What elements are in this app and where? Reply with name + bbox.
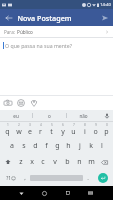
staticText: Nova Postagem: [17, 13, 72, 23]
staticText: x: [30, 157, 34, 167]
staticText: 9: [95, 123, 97, 127]
staticText: 2: [18, 123, 20, 127]
button[interactable]: c: [37, 154, 49, 170]
staticText: j: [79, 141, 81, 151]
staticText: Para:: [4, 29, 15, 35]
button[interactable]: Sentimento: [15, 97, 27, 109]
staticText: Público: [17, 29, 33, 35]
button[interactable]: Voltar: [10, 186, 33, 200]
button[interactable]: n: [73, 154, 85, 170]
button[interactable]: 7: [68, 122, 79, 138]
button[interactable]: Voz: [100, 110, 113, 121]
button[interactable]: Início: [33, 186, 56, 200]
staticText: k: [89, 141, 93, 151]
staticText: g: [55, 141, 60, 151]
button[interactable]: v: [49, 154, 61, 170]
button[interactable]: o: [33, 110, 66, 121]
staticText: 5: [51, 123, 53, 127]
button[interactable]: Recentes: [56, 186, 79, 200]
button[interactable]: b: [61, 154, 73, 170]
button[interactable]: Enter: [93, 170, 112, 186]
staticText: o: [48, 113, 51, 119]
staticText: l: [101, 141, 103, 151]
button[interactable]: x: [26, 154, 37, 170]
button[interactable]: ?1☺: [1, 170, 20, 186]
button[interactable]: 1: [1, 122, 13, 138]
staticText: a: [10, 141, 14, 151]
button[interactable]: Publicar: [96, 9, 113, 26]
button[interactable]: 5: [46, 122, 57, 138]
staticText: 7: [73, 123, 75, 127]
button[interactable]: Teclado: [79, 186, 102, 200]
staticText: O que passa na sua mente?: [5, 42, 72, 49]
staticText: ,: [24, 174, 26, 182]
staticText: n: [77, 157, 82, 167]
staticText: c: [41, 157, 45, 167]
staticText: r: [39, 127, 42, 137]
staticText: v: [53, 157, 57, 167]
staticText: eu: [13, 113, 19, 119]
staticText: .: [87, 174, 89, 182]
button[interactable]: s: [18, 138, 30, 154]
button[interactable]: 6: [57, 122, 68, 138]
staticText: w: [16, 127, 22, 137]
button[interactable]: 8: [79, 122, 90, 138]
staticText: y: [61, 127, 65, 137]
staticText: s: [22, 141, 26, 151]
button[interactable]: a: [6, 138, 18, 154]
button[interactable]: l: [96, 138, 107, 154]
staticText: p: [104, 127, 109, 137]
staticText: 4: [40, 123, 42, 127]
staticText: não: [79, 113, 88, 119]
button[interactable]: .: [83, 170, 93, 186]
button[interactable]: z: [15, 154, 26, 170]
button[interactable]: g: [52, 138, 63, 154]
staticText: e: [28, 127, 32, 137]
button[interactable]: 9: [90, 122, 101, 138]
staticText: u: [71, 127, 76, 137]
button[interactable]: Shift: [1, 154, 15, 170]
button[interactable]: d: [30, 138, 41, 154]
staticText: z: [19, 157, 23, 167]
staticText: h: [66, 141, 71, 151]
button[interactable]: j: [74, 138, 85, 154]
staticText: o: [93, 127, 98, 137]
button[interactable]: 3: [24, 122, 35, 138]
button[interactable]: k: [85, 138, 96, 154]
staticText: 6: [62, 123, 64, 127]
staticText: f: [45, 141, 48, 151]
button[interactable]: h: [63, 138, 74, 154]
staticText: q: [5, 127, 10, 137]
button[interactable]: 4: [35, 122, 46, 138]
button[interactable]: não: [67, 110, 100, 121]
staticText: m: [88, 157, 95, 167]
staticText: 14:40: [100, 2, 111, 8]
button[interactable]: Local: [28, 97, 40, 109]
staticText: 1: [7, 123, 9, 127]
button[interactable]: Apagar: [97, 154, 112, 170]
staticText: b: [65, 157, 70, 167]
button[interactable]: Foto: [2, 97, 14, 109]
staticText: ?1☺: [6, 175, 16, 181]
button[interactable]: eu: [0, 110, 32, 121]
button[interactable]: 2: [13, 122, 24, 138]
button[interactable]: f: [41, 138, 52, 154]
button[interactable]: ,: [20, 170, 30, 186]
staticText: i: [84, 127, 86, 137]
button[interactable]: Back: [0, 9, 17, 26]
button[interactable]: Para:: [0, 26, 113, 37]
staticText: t: [50, 127, 53, 137]
button[interactable]: 0: [101, 122, 112, 138]
staticText: 8: [84, 123, 86, 127]
staticText: 3: [29, 123, 31, 127]
staticText: 0: [106, 123, 108, 127]
staticText: d: [33, 141, 38, 151]
button[interactable]: m: [85, 154, 97, 170]
